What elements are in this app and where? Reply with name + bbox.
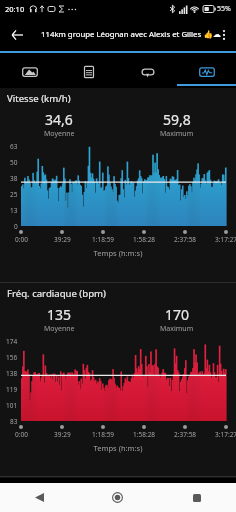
- staticText: 20:10: [5, 4, 25, 14]
- staticText: Fréq. cardiaque (bpm): [7, 287, 106, 300]
- staticText: 1:58:28: [133, 235, 156, 244]
- staticText: Moyenne: [44, 324, 75, 334]
- staticText: 25: [10, 190, 18, 199]
- staticText: 0: [14, 222, 18, 231]
- staticText: 119: [6, 385, 18, 394]
- staticText: 101: [6, 401, 18, 410]
- button[interactable]: More options: [212, 23, 236, 47]
- staticText: Vitesse (km/h): [7, 92, 71, 105]
- staticText: Temps (h:m:s): [0, 443, 236, 453]
- button[interactable]: Back: [3, 21, 31, 49]
- button[interactable]: Home: [78, 483, 157, 512]
- staticText: Maximum: [160, 129, 194, 139]
- staticText: 138: [6, 369, 18, 378]
- staticText: 3:17:27: [215, 430, 236, 439]
- staticText: 39:29: [54, 235, 71, 244]
- staticText: Temps (h:m:s): [0, 248, 236, 258]
- staticText: 2:37:58: [174, 430, 197, 439]
- staticText: 1:18:59: [92, 235, 115, 244]
- staticText: 38: [10, 174, 18, 183]
- staticText: Maximum: [160, 324, 194, 334]
- staticText: 2:37:58: [174, 235, 197, 244]
- button[interactable]: Charts: [177, 52, 236, 86]
- staticText: 63: [10, 142, 18, 151]
- staticText: 0:00: [15, 235, 28, 244]
- staticText: 50: [10, 158, 18, 167]
- staticText: 83: [10, 417, 18, 426]
- staticText: 0:00: [15, 430, 28, 439]
- staticText: 13: [10, 206, 18, 215]
- button[interactable]: Back: [0, 483, 78, 512]
- staticText: 135: [47, 305, 72, 324]
- staticText: 39:29: [54, 430, 71, 439]
- staticText: 1:58:28: [133, 430, 156, 439]
- staticText: 174: [6, 337, 18, 346]
- staticText: 34,6: [45, 110, 73, 129]
- button[interactable]: Laps: [118, 52, 177, 86]
- staticText: 156: [6, 353, 18, 362]
- button[interactable]: Recent apps: [157, 483, 236, 512]
- staticText: 114km groupe Léognan avec Alexis et Gill…: [41, 29, 221, 40]
- staticText: 170: [165, 305, 190, 324]
- staticText: 3:17:27: [215, 235, 236, 244]
- staticText: 55%: [217, 4, 231, 14]
- staticText: 59,8: [163, 110, 191, 129]
- staticText: 1:18:59: [92, 430, 115, 439]
- button[interactable]: Details: [59, 52, 118, 86]
- staticText: Moyenne: [44, 129, 75, 139]
- button[interactable]: Map: [0, 52, 59, 86]
